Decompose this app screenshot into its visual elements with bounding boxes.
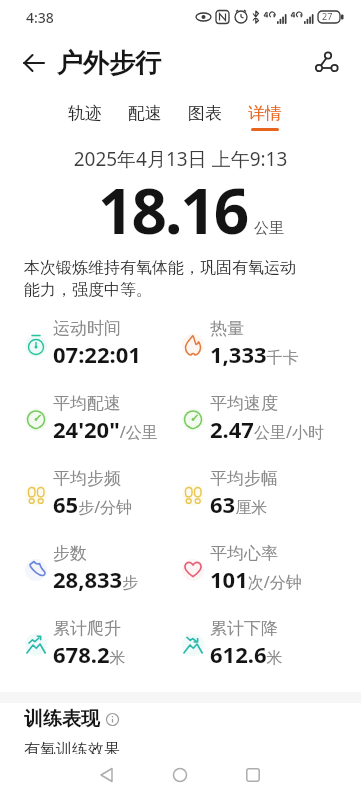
staticText: 本次锻炼维持有氧体能，巩固有氧运动 能力，强度中等。 [24,258,296,299]
button[interactable]: 轨迹 [68,103,102,131]
staticText: 28,833步 [53,564,139,594]
staticText: 热量 [210,318,244,339]
staticText: 27 [322,10,333,22]
staticText: 101次/分钟 [210,564,302,594]
button[interactable] [314,51,338,75]
button[interactable]: 累计下降 [181,618,283,669]
button[interactable]: 累计爬升 [24,618,126,669]
staticText: 612.6米 [210,639,283,669]
staticText: 平均步幅 [210,468,278,489]
staticText: 公里 [254,219,284,238]
button[interactable]: 平均步频 [24,468,133,519]
staticText: 图表 [188,103,222,124]
button[interactable]: 步数 [24,543,139,594]
button[interactable]: 平均步幅 [181,468,278,519]
staticText: 678.2米 [53,639,126,669]
staticText: 配速 [128,103,162,124]
staticText: 步数 [53,543,87,564]
staticText: 轨迹 [68,103,102,124]
staticText: 63厘米 [210,489,268,519]
staticText: 有氧训练效果 [24,740,120,760]
staticText: 2025年4月13日 上午9:13 [0,146,361,172]
staticText: 18.16 [98,168,248,252]
button[interactable]: 热量 [181,318,299,369]
button[interactable] [22,51,46,75]
button[interactable]: 图表 [188,103,222,131]
staticText: 平均步频 [53,468,121,489]
staticText: 1,333千卡 [210,339,299,369]
staticText: 07:22:01 [53,339,141,369]
button[interactable] [173,768,187,782]
staticText: 24'20"/公里 [53,414,158,444]
staticText: 详情 [248,103,282,124]
button[interactable]: 配速 [128,103,162,131]
button[interactable]: 平均心率 [181,543,302,594]
button[interactable] [100,768,114,782]
staticText: 平均心率 [210,543,278,564]
staticText: 平均速度 [210,393,278,414]
staticText: 累计爬升 [53,618,121,639]
staticText: 运动时间 [53,318,121,339]
staticText: 65步/分钟 [53,489,133,519]
staticText: 训练表现 [24,707,100,731]
staticText: 4:38 [26,8,54,27]
button[interactable]: 平均速度 [181,393,324,444]
button[interactable]: 详情 [248,103,282,131]
staticText: 户外步行 [57,47,161,80]
staticText: 累计下降 [210,618,278,639]
button[interactable] [246,768,260,782]
button[interactable]: 运动时间 [24,318,141,369]
staticText: 平均配速 [53,393,121,414]
staticText: 2.47公里/小时 [210,414,324,444]
button[interactable]: 平均配速 [24,393,158,444]
